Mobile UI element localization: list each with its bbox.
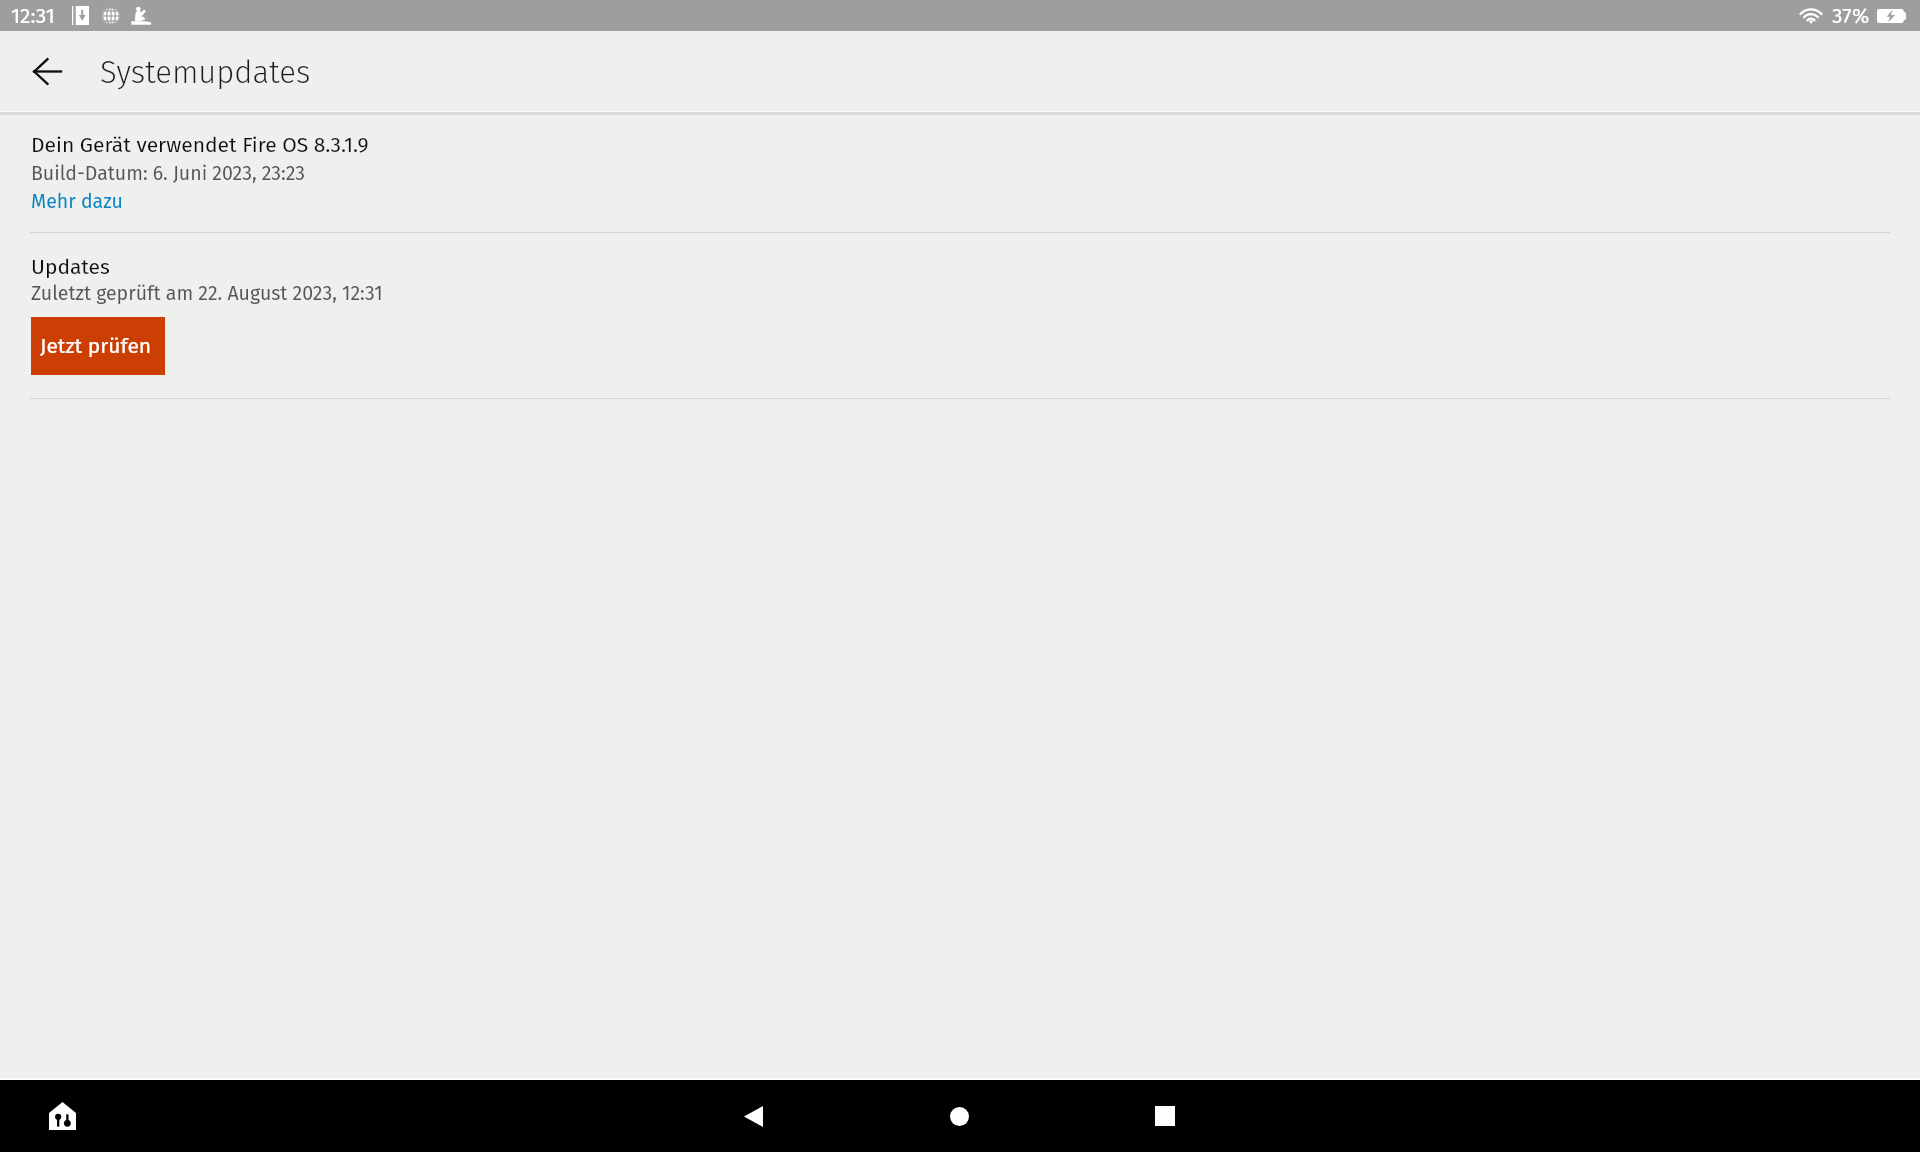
button[interactable]: Zurück: [717, 1080, 789, 1152]
staticText: Zuletzt geprüft am 22. August 2023, 12:3…: [31, 282, 383, 305]
staticText: Build-Datum: 6. Juni 2023, 23:23: [31, 162, 305, 185]
button[interactable]: Geräteeinstellungen: [36, 1090, 88, 1142]
staticText: Mehr dazu: [31, 190, 123, 213]
staticText: Updates: [31, 254, 110, 279]
staticText: 12:31: [11, 3, 55, 28]
button[interactable]: Zurück: [17, 41, 77, 101]
staticText: Jetzt prüfen: [40, 333, 152, 358]
button[interactable]: Letzte Apps: [1129, 1080, 1201, 1152]
staticText: Systemupdates: [100, 54, 311, 91]
button[interactable]: Jetzt prüfen: [31, 317, 165, 375]
button[interactable]: Startbildschirm: [923, 1080, 995, 1152]
staticText: Dein Gerät verwendet Fire OS 8.3.1.9: [31, 132, 369, 157]
staticText: 37%: [1832, 3, 1870, 28]
button[interactable]: Mehr dazu: [31, 190, 123, 213]
